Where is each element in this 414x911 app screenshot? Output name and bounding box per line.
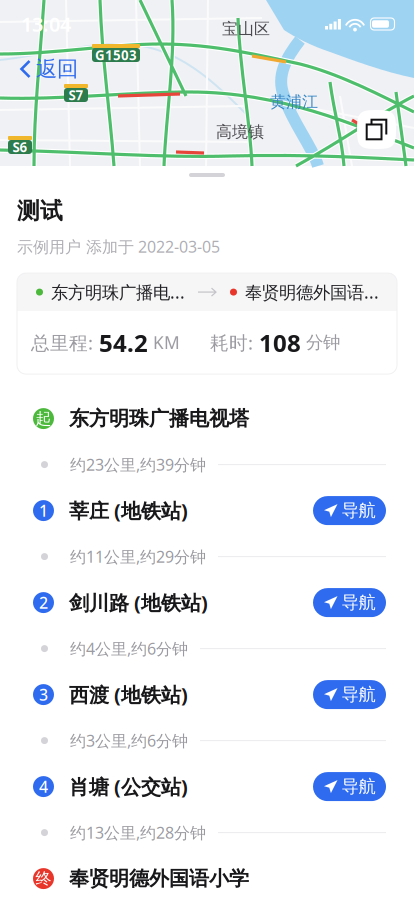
staticText: 示例用户 添加于 2022-03-05 bbox=[17, 236, 220, 257]
staticText: 西渡 (地铁站) bbox=[69, 681, 188, 708]
staticText: 导航 bbox=[341, 684, 375, 705]
staticText: 4 bbox=[39, 776, 48, 797]
staticText: 2 bbox=[39, 592, 48, 613]
staticText: 分钟 bbox=[301, 332, 340, 353]
staticText: 肖塘 (公交站) bbox=[69, 773, 188, 800]
button[interactable]: 返回 bbox=[0, 52, 78, 86]
staticText: 奉贤明德外国语小学 bbox=[69, 866, 249, 891]
staticText: 约11公里,约29分钟 bbox=[70, 546, 206, 567]
staticText: 黄浦江 bbox=[270, 92, 318, 112]
staticText: 导航 bbox=[341, 500, 375, 521]
staticText: 奉贤明德外国语... bbox=[245, 281, 379, 304]
staticText: 约13公里,约28分钟 bbox=[70, 822, 206, 843]
staticText: 导航 bbox=[341, 776, 375, 797]
staticText: 莘庄 (地铁站) bbox=[69, 497, 188, 524]
staticText: 108 bbox=[253, 327, 301, 359]
staticText: G1503 bbox=[95, 46, 137, 64]
staticText: 13:04 bbox=[21, 11, 71, 37]
staticText: 耗时: bbox=[210, 330, 253, 355]
staticText: 高境镇 bbox=[216, 122, 264, 142]
staticText: 宝山区 bbox=[222, 19, 270, 39]
staticText: 测试 bbox=[17, 197, 63, 225]
button[interactable]: 导航 bbox=[313, 496, 386, 525]
staticText: S7 bbox=[68, 86, 83, 104]
staticText: 约4公里,约6分钟 bbox=[70, 638, 188, 659]
button[interactable]: 导航 bbox=[313, 588, 386, 617]
staticText: 导航 bbox=[341, 592, 375, 613]
button[interactable]: 导航 bbox=[313, 772, 386, 801]
staticText: 东方明珠广播电... bbox=[51, 281, 185, 304]
staticText: 约23公里,约39分钟 bbox=[70, 454, 206, 475]
button[interactable]: 导航 bbox=[313, 680, 386, 709]
staticText: 总里程: bbox=[31, 330, 93, 355]
staticText: 约3公里,约6分钟 bbox=[70, 730, 188, 751]
staticText: KM bbox=[148, 331, 180, 354]
staticText: 54.2 bbox=[93, 327, 148, 359]
staticText: 起 bbox=[35, 409, 51, 428]
staticText: 东方明珠广播电视塔 bbox=[69, 406, 249, 431]
staticText: 剑川路 (地铁站) bbox=[69, 589, 208, 616]
staticText: 3 bbox=[39, 684, 48, 705]
staticText: S6 bbox=[12, 138, 27, 156]
staticText: 终 bbox=[35, 869, 51, 888]
button[interactable]: Map layers bbox=[357, 110, 396, 149]
staticText: 返回 bbox=[36, 56, 78, 82]
staticText: 1 bbox=[39, 500, 48, 521]
